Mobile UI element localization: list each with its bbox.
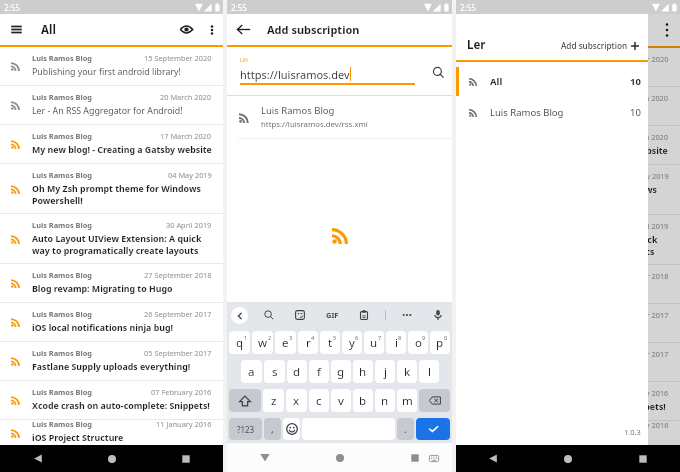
- staticText: m: [402, 393, 413, 409]
- button[interactable]: Hide keyboard: [227, 443, 302, 472]
- button[interactable]: Enter: [416, 418, 450, 440]
- button[interactable]: Recents: [377, 443, 452, 472]
- button[interactable]: Mark all read: [173, 14, 200, 45]
- button[interactable]: h: [353, 360, 373, 383]
- button[interactable]: Luis Ramos Blog: [227, 96, 452, 139]
- button[interactable]: d: [287, 360, 307, 383]
- staticText: t: [328, 335, 333, 351]
- button[interactable]: Shift: [229, 389, 261, 412]
- staticText: My new blog! - Creating a Gatsby website: [488, 145, 668, 157]
- button[interactable]: l: [419, 360, 439, 383]
- button[interactable]: Stickers: [290, 305, 310, 325]
- button[interactable]: Home: [302, 443, 377, 472]
- button[interactable]: Luis Ramos Blog: [456, 165, 680, 215]
- button[interactable]: More: [397, 305, 417, 325]
- button[interactable]: Back: [456, 445, 530, 472]
- button[interactable]: Luis Ramos Blog: [456, 265, 680, 304]
- staticText: n: [381, 393, 389, 409]
- button[interactable]: a: [241, 360, 262, 383]
- button[interactable]: e: [275, 331, 296, 354]
- button[interactable]: Back: [456, 445, 530, 472]
- button[interactable]: Back: [0, 445, 75, 472]
- button[interactable]: Luis Ramos Blog: [0, 214, 223, 264]
- button[interactable]: ?123: [229, 418, 262, 440]
- button[interactable]: Search: [259, 305, 279, 325]
- button[interactable]: Add subscription: [559, 36, 641, 55]
- staticText: v: [338, 393, 344, 409]
- button[interactable]: Luis Ramos Blog: [456, 382, 680, 421]
- button[interactable]: Home: [530, 445, 605, 472]
- button[interactable]: u: [364, 331, 384, 354]
- button[interactable]: Recents: [605, 445, 680, 472]
- button[interactable]: Luis Ramos Blog: [0, 381, 223, 420]
- button[interactable]: Luis Ramos Blog: [456, 343, 680, 382]
- staticText: 10: [630, 106, 641, 119]
- button[interactable]: i: [386, 331, 406, 354]
- staticText: Luis Ramos Blog: [32, 387, 92, 397]
- button[interactable]: Luis Ramos Blog: [456, 98, 648, 127]
- button[interactable]: o: [408, 331, 428, 354]
- button[interactable]: v: [331, 389, 351, 412]
- button[interactable]: Recents: [149, 445, 223, 472]
- button[interactable]: Luis Ramos Blog: [0, 420, 223, 445]
- staticText: 2:55: [4, 2, 20, 13]
- button[interactable]: Emoji: [283, 418, 300, 440]
- button[interactable]: Luis Ramos Blog: [456, 126, 680, 165]
- button[interactable]: Luis Ramos Blog: [0, 164, 223, 214]
- button[interactable]: y: [342, 331, 362, 354]
- button[interactable]: All: [456, 67, 648, 96]
- button[interactable]: Luis Ramos Blog: [456, 421, 680, 445]
- button[interactable]: p: [430, 331, 450, 354]
- button[interactable]: Luis Ramos Blog: [0, 264, 223, 303]
- button[interactable]: Luis Ramos Blog: [0, 86, 223, 125]
- button[interactable]: n: [375, 389, 395, 412]
- staticText: o: [415, 335, 422, 351]
- button[interactable]: k: [397, 360, 417, 383]
- button[interactable]: More options: [200, 14, 223, 45]
- button[interactable]: j: [375, 360, 395, 383]
- button[interactable]: GIF: [321, 304, 343, 326]
- button[interactable]: r: [298, 331, 318, 354]
- button[interactable]: Back: [231, 307, 248, 324]
- button[interactable]: Luis Ramos Blog: [0, 342, 223, 381]
- button[interactable]: Backspace: [419, 389, 450, 412]
- staticText: Luis Ramos Blog: [32, 348, 92, 358]
- button[interactable]: w: [252, 331, 273, 354]
- button[interactable]: Luis Ramos Blog: [456, 87, 680, 126]
- button[interactable]: Home: [530, 445, 605, 472]
- button[interactable]: g: [331, 360, 351, 383]
- button[interactable]: Home: [75, 445, 149, 472]
- button[interactable]: b: [353, 389, 373, 412]
- button[interactable]: t: [320, 331, 340, 354]
- button[interactable]: x: [286, 389, 307, 412]
- button[interactable]: Luis Ramos Blog: [0, 125, 223, 164]
- button[interactable]: s: [264, 360, 285, 383]
- button[interactable]: Luis Ramos Blog: [0, 47, 223, 86]
- button[interactable]: Recents: [605, 445, 680, 472]
- button[interactable]: ,: [264, 418, 281, 440]
- button[interactable]: c: [309, 389, 329, 412]
- button[interactable]: Luis Ramos Blog: [0, 303, 223, 342]
- button[interactable]: Switch keyboard: [426, 450, 442, 466]
- button[interactable]: q: [229, 331, 250, 354]
- button[interactable]: Back: [227, 14, 260, 45]
- button[interactable]: .: [397, 418, 414, 440]
- button[interactable]: f: [309, 360, 329, 383]
- staticText: u: [370, 335, 378, 351]
- button[interactable]: Clipboard: [354, 305, 374, 325]
- button[interactable]: More options: [654, 17, 680, 43]
- button[interactable]: z: [263, 389, 284, 412]
- button[interactable]: Voice input: [428, 305, 448, 325]
- button[interactable]: Luis Ramos Blog: [456, 215, 680, 265]
- staticText: Luis Ramos Blog: [488, 54, 548, 64]
- button[interactable]: Search: [426, 60, 450, 84]
- button[interactable]: Luis Ramos Blog: [456, 48, 680, 87]
- button[interactable]: m: [397, 389, 417, 412]
- button[interactable]: Menu: [0, 14, 32, 45]
- button[interactable]: Luis Ramos Blog: [456, 304, 680, 343]
- staticText: 11 January 2016: [156, 419, 212, 429]
